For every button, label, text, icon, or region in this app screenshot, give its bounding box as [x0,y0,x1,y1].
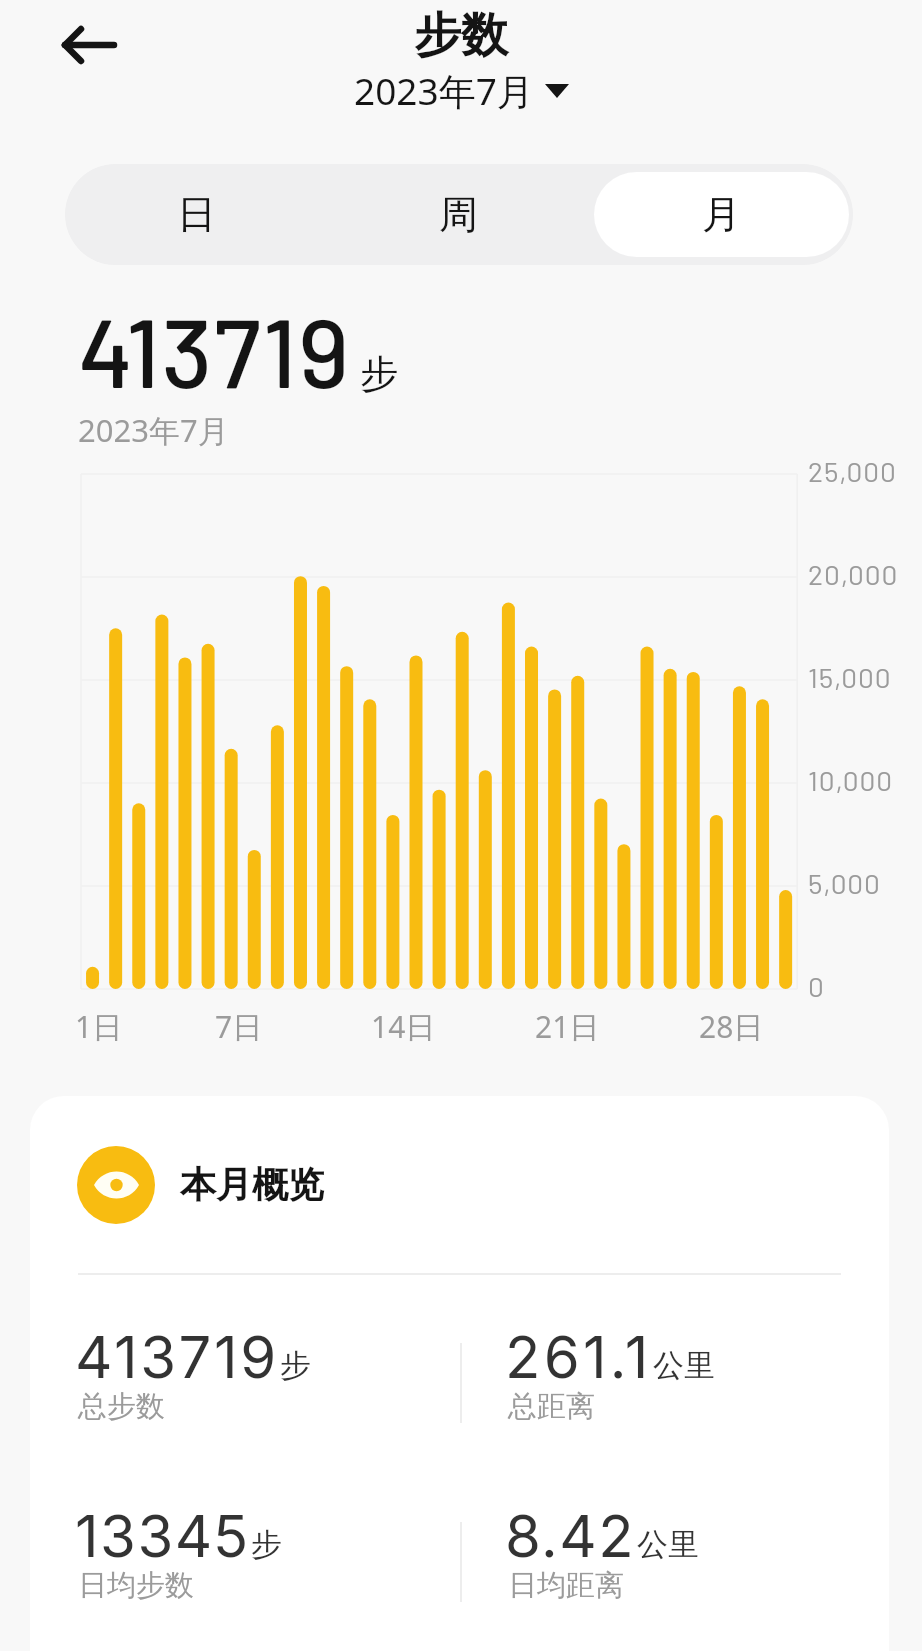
staticText: 8.42 [505,1501,636,1571]
button[interactable]: 周 [331,172,586,257]
staticText: 5,000 [808,866,881,900]
staticText: 25,000 [808,454,897,488]
staticText: 公里 [653,1346,715,1385]
staticText: 步 [360,350,398,398]
staticText: 日 [177,190,216,239]
button[interactable]: 8.42 [505,1501,865,1631]
button[interactable]: 月 [594,172,849,257]
staticText: 21日 [535,1006,600,1047]
staticText: 0 [808,969,825,1003]
staticText: 413719 [75,1322,279,1392]
button[interactable]: 13345 [75,1501,435,1631]
staticText: 日均距离 [508,1567,624,1604]
staticText: 步数 [414,6,508,65]
staticText: 总距离 [508,1388,595,1425]
staticText: 日均步数 [78,1567,194,1604]
staticText: 1日 [75,1006,123,1047]
button[interactable]: 日 [69,172,323,257]
staticText: 15,000 [808,660,892,694]
button[interactable]: 261.1 [505,1322,865,1452]
staticText: 10,000 [808,763,893,797]
staticText: 步 [280,1346,311,1385]
button[interactable]: 413719 [75,1322,435,1452]
staticText: 周 [439,190,478,239]
button[interactable]: Back [45,20,95,70]
staticText: 20,000 [808,557,899,591]
staticText: 本月概览 [180,1162,324,1207]
staticText: 261.1 [505,1322,652,1392]
button[interactable]: 2023年7月 [354,65,569,116]
staticText: 28日 [699,1006,764,1047]
staticText: 步 [251,1525,282,1564]
staticText: 总步数 [78,1388,165,1425]
button[interactable]: 本月概览 [77,1096,889,1273]
staticText: 公里 [637,1525,699,1564]
staticText: 2023年7月 [78,409,229,451]
staticText: 月 [702,190,741,239]
staticText: 2023年7月 [354,65,534,116]
staticText: 413719 [78,291,351,407]
staticText: 14日 [371,1006,436,1047]
staticText: 13345 [75,1501,250,1571]
staticText: 7日 [215,1006,263,1047]
